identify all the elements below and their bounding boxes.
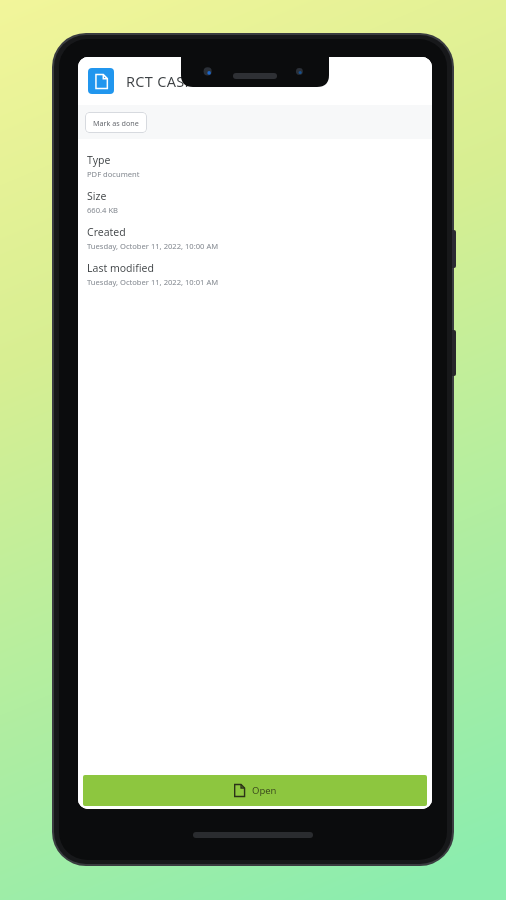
button[interactable]: Mark as done [85, 112, 147, 133]
staticText: Tuesday, October 11, 2022, 10:00 AM [87, 241, 219, 251]
button[interactable]: Document [88, 68, 114, 94]
staticText: Type [87, 153, 111, 167]
staticText: Last modified [87, 261, 154, 275]
staticText: 660.4 KB [87, 205, 119, 215]
staticText: Created [87, 225, 126, 239]
staticText: Open [252, 784, 277, 797]
staticText: RCT CASP [126, 71, 194, 91]
button[interactable]: Open [83, 775, 427, 806]
staticText: Tuesday, October 11, 2022, 10:01 AM [87, 277, 219, 287]
staticText: Size [87, 189, 107, 203]
staticText: Mark as done [93, 118, 139, 128]
staticText: PDF document [87, 169, 140, 179]
